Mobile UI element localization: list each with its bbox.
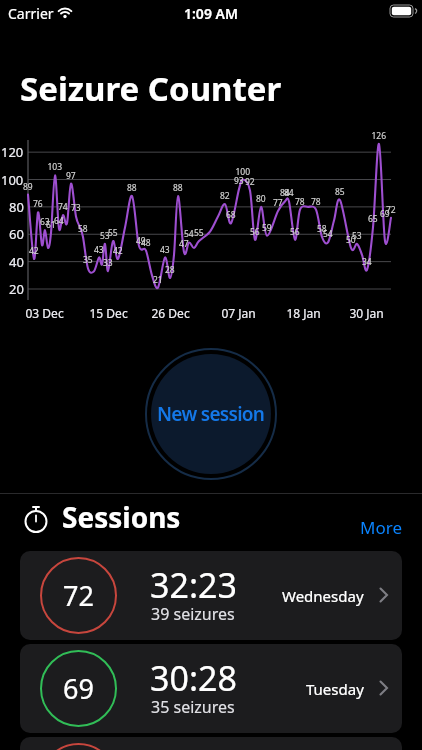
staticText: 30:28 [150,655,237,701]
button[interactable]: 64 [20,737,402,750]
staticText: Sessions [62,498,181,536]
staticText: Seizure Counter [20,66,282,111]
staticText: Wednesday [282,586,364,606]
staticText: 72 [63,577,94,614]
staticText: 32:23 [150,562,237,608]
button[interactable]: More [340,512,402,542]
staticText: New session [157,401,265,427]
staticText: 1:09 AM [184,4,238,23]
staticText: 35 seizures [151,696,235,718]
button[interactable]: 69 [20,644,402,733]
staticText: Carrier [8,4,54,23]
button[interactable]: 72 [20,551,402,640]
staticText: Tuesday [306,679,364,699]
staticText: 39 seizures [151,603,235,625]
button[interactable]: New session [151,354,271,474]
staticText: More [360,516,402,539]
staticText: 69 [63,670,94,707]
